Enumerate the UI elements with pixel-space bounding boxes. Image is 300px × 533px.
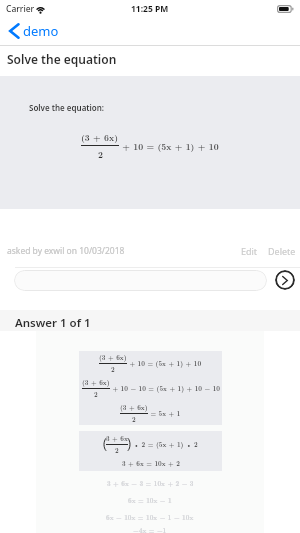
staticText: (3 + 6x) xyxy=(81,131,119,143)
staticText: Answer 1 of 1 xyxy=(15,315,91,331)
staticText: 2 xyxy=(111,365,115,374)
staticText: 11:25 PM xyxy=(131,3,169,15)
staticText: + 10 = (5x + 1) + 10 xyxy=(127,359,202,368)
staticText: (3 + 6x) xyxy=(99,353,127,362)
staticText: (3 + 6x) xyxy=(82,378,110,387)
staticText: (3 + 6x) xyxy=(120,403,148,412)
button[interactable]: Answer input xyxy=(14,270,267,291)
staticText: 6x = 10x − 1 xyxy=(128,496,172,505)
staticText: 3 + 6x − 3 = 10x + 2 − 3 xyxy=(107,479,194,488)
button[interactable]: Edit xyxy=(236,241,263,261)
button[interactable]: Submit answer xyxy=(275,270,295,290)
staticText: demo xyxy=(23,22,59,40)
staticText: 3 + 6x xyxy=(106,434,128,443)
staticText: 2 xyxy=(132,415,136,423)
staticText: Solve the equation xyxy=(7,51,117,67)
staticText: Solve the equation: xyxy=(29,102,105,113)
staticText: 2 xyxy=(94,390,98,399)
button[interactable]: demo xyxy=(0,19,69,43)
staticText: • 2 = (5x + 1) • 2 xyxy=(131,440,198,449)
staticText: Carrier xyxy=(6,3,35,15)
button[interactable]: Delete xyxy=(263,241,300,261)
staticText: 6x − 10x = 10x − 1 − 10x xyxy=(106,513,194,522)
staticText: −4x = −1 xyxy=(133,526,167,533)
staticText: asked by exwil on 10/03/2018 xyxy=(7,245,125,257)
staticText: 2 xyxy=(98,148,103,160)
staticText: = 5x + 1 xyxy=(148,409,181,418)
staticText: 3 + 6x = 10x + 2 xyxy=(122,459,180,468)
staticText: + 10 = (5x + 1) + 10 xyxy=(119,140,219,152)
staticText: + 10 − 10 = (5x + 1) + 10 − 10 xyxy=(110,384,220,393)
staticText: 2 xyxy=(115,446,119,455)
